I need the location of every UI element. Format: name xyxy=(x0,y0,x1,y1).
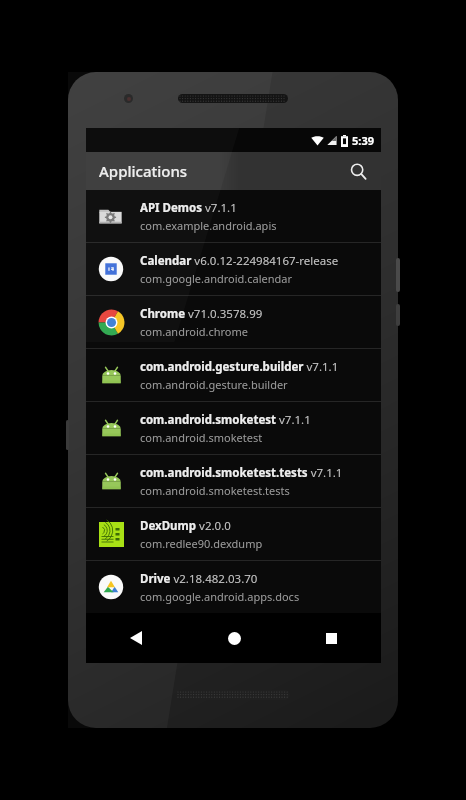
staticText: com.android.gesture.builder xyxy=(140,377,288,392)
button[interactable]: Recent apps xyxy=(307,616,355,660)
button[interactable]: Home xyxy=(210,616,258,660)
button[interactable]: com.android.smoketest.tests v7.1.1 xyxy=(86,455,381,507)
button[interactable]: API Demos v7.1.1 xyxy=(86,190,381,242)
button[interactable]: Back xyxy=(112,616,160,660)
staticText: com.android.smoketest v7.1.1 xyxy=(140,412,311,428)
staticText: Calendar v6.0.12-224984167-release xyxy=(140,253,339,269)
button[interactable]: Drive v2.18.482.03.70 xyxy=(86,561,381,613)
button[interactable]: Search xyxy=(342,155,374,187)
button[interactable]: Chrome v71.0.3578.99 xyxy=(86,296,381,348)
button[interactable]: Calendar v6.0.12-224984167-release xyxy=(86,243,381,295)
staticText: DexDump v2.0.0 xyxy=(140,518,231,534)
staticText: com.redlee90.dexdump xyxy=(140,536,263,551)
staticText: Applications xyxy=(99,161,188,181)
staticText: Drive v2.18.482.03.70 xyxy=(140,571,258,587)
staticText: com.google.android.apps.docs xyxy=(140,589,300,604)
staticText: com.google.android.calendar xyxy=(140,271,293,286)
button[interactable]: com.android.smoketest v7.1.1 xyxy=(86,402,381,454)
staticText: com.android.chrome xyxy=(140,324,248,339)
staticText: com.android.gesture.builder v7.1.1 xyxy=(140,359,339,375)
button[interactable]: com.android.gesture.builder v7.1.1 xyxy=(86,349,381,401)
staticText: com.android.smoketest.tests xyxy=(140,483,290,498)
staticText: com.android.smoketest xyxy=(140,430,263,445)
staticText: com.android.smoketest.tests v7.1.1 xyxy=(140,465,343,481)
staticText: com.example.android.apis xyxy=(140,218,277,233)
staticText: 5:39 xyxy=(352,133,374,148)
staticText: Chrome v71.0.3578.99 xyxy=(140,306,263,322)
staticText: API Demos v7.1.1 xyxy=(140,200,237,216)
button[interactable]: DexDump v2.0.0 xyxy=(86,508,381,560)
